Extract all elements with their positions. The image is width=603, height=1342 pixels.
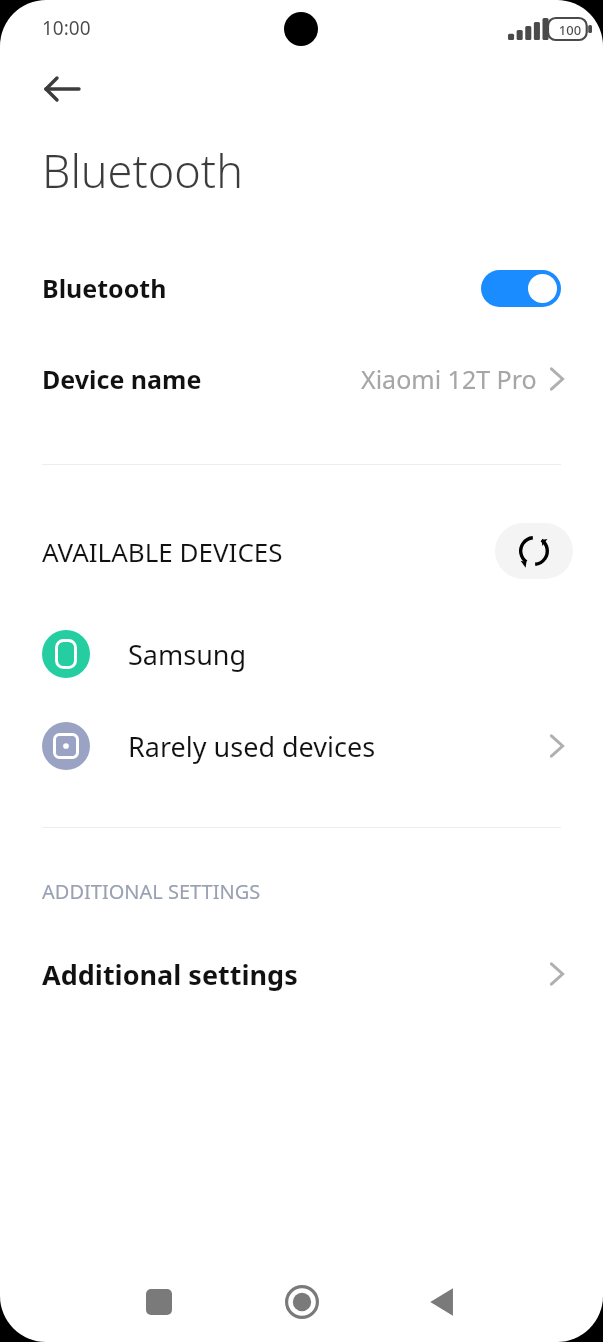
staticText: Additional settings — [42, 956, 298, 993]
button[interactable]: Recents — [128, 1271, 190, 1333]
staticText: Xiaomi 12T Pro — [361, 362, 537, 396]
button[interactable]: Samsung — [0, 613, 603, 695]
button[interactable]: Rarely used devices — [0, 705, 603, 787]
button[interactable]: Device name — [0, 344, 603, 414]
button[interactable]: Additional settings — [0, 937, 603, 1011]
staticText: Device name — [42, 362, 202, 396]
button[interactable]: Refresh — [495, 523, 573, 579]
staticText: AVAILABLE DEVICES — [42, 534, 283, 569]
staticText: 10:00 — [42, 15, 91, 41]
staticText: 100 — [553, 21, 587, 39]
button[interactable]: Home — [271, 1271, 333, 1333]
button[interactable]: Back — [411, 1271, 473, 1333]
button[interactable]: Bluetooth toggle — [481, 270, 561, 307]
staticText: Bluetooth — [42, 140, 243, 201]
staticText: ADDITIONAL SETTINGS — [42, 878, 261, 905]
staticText: Bluetooth — [42, 271, 167, 305]
staticText: Samsung — [128, 636, 247, 673]
button[interactable]: Bluetooth — [0, 249, 603, 327]
button[interactable]: Back — [26, 60, 98, 118]
staticText: Rarely used devices — [128, 728, 376, 765]
